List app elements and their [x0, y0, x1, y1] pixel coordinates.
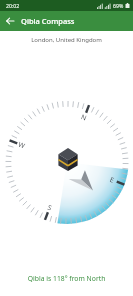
- staticText: London, United Kingdom: [0, 36, 133, 44]
- staticText: 69%: [113, 2, 124, 9]
- button[interactable]: Back: [0, 11, 20, 31]
- staticText: Qibla Compass: [21, 16, 75, 26]
- staticText: 20:02: [6, 2, 20, 9]
- staticText: Qibla is 118° from North: [0, 274, 133, 283]
